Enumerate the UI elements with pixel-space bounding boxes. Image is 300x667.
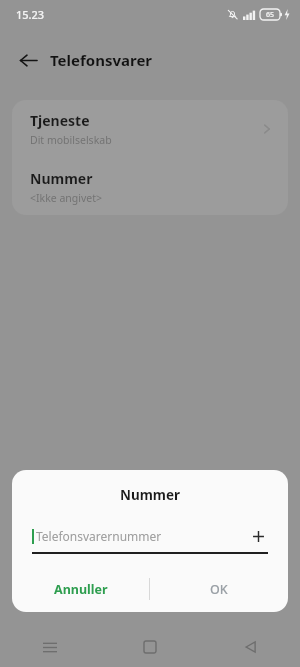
staticText: OK — [210, 581, 228, 598]
button[interactable]: Tjeneste — [12, 100, 288, 158]
staticText: Telefonsvarer — [50, 50, 153, 70]
staticText: Dit mobilselskab — [30, 133, 112, 147]
staticText: 15.23 — [16, 7, 45, 22]
staticText: Annuller — [54, 581, 108, 598]
button[interactable]: Back — [200, 627, 300, 667]
button[interactable]: Home — [100, 627, 200, 667]
button[interactable]: Nummer — [12, 158, 288, 215]
staticText: <Ikke angivet> — [30, 191, 103, 205]
button[interactable]: Telefonsvarernummer — [32, 526, 268, 546]
button[interactable]: Add contact — [248, 526, 268, 546]
staticText: 65 — [266, 10, 275, 20]
button[interactable]: Recent apps — [0, 627, 100, 667]
staticText: Telefonsvarernummer — [36, 528, 162, 544]
staticText: Nummer — [12, 486, 288, 504]
button[interactable]: Annuller — [12, 572, 149, 606]
staticText: Tjeneste — [30, 111, 90, 130]
button[interactable]: Back — [8, 40, 48, 80]
staticText: Nummer — [30, 169, 93, 188]
button[interactable]: OK — [150, 572, 288, 606]
